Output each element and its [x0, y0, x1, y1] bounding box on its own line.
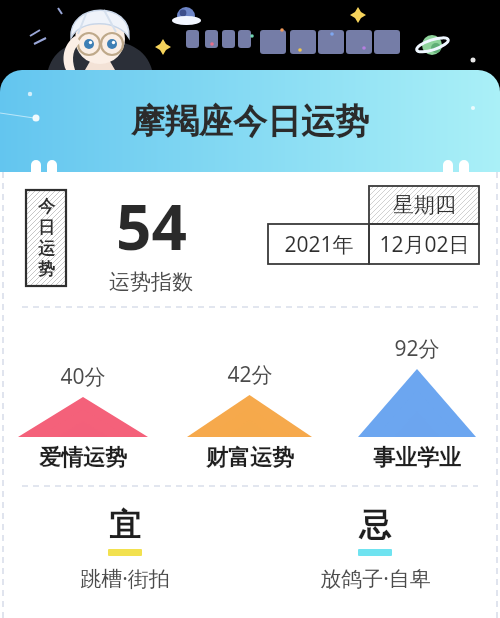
staticText: 势 — [38, 259, 55, 280]
staticText: 事业学业 — [373, 444, 461, 472]
staticText: 跳槽·街拍 — [80, 564, 170, 593]
staticText: 12月02日 — [379, 230, 470, 259]
staticText: 运 — [38, 238, 55, 259]
staticText: 放鸽子·自卑 — [320, 564, 431, 593]
staticText: 财富运势 — [206, 444, 294, 472]
staticText: 54 — [116, 184, 187, 268]
staticText: 今 — [38, 196, 55, 217]
button[interactable]: 摩羯座今日运势 — [0, 70, 500, 172]
button[interactable]: 宜 — [0, 505, 250, 593]
staticText: 2021年 — [284, 230, 354, 259]
button[interactable]: 忌 — [250, 505, 500, 593]
staticText: 42分 — [227, 360, 273, 389]
staticText: 92分 — [394, 334, 440, 363]
button[interactable]: 今 — [26, 190, 66, 286]
button[interactable]: 92分 — [333, 334, 500, 472]
staticText: 忌 — [359, 505, 391, 545]
staticText: 星期四 — [393, 192, 456, 218]
staticText: 日 — [38, 217, 55, 238]
button[interactable]: 42分 — [166, 360, 333, 472]
staticText: 爱情运势 — [39, 444, 127, 472]
button[interactable]: 54 — [88, 184, 214, 295]
staticText: 运势指数 — [109, 269, 193, 295]
button[interactable]: 星期四 — [268, 186, 479, 226]
staticText: 宜 — [109, 505, 141, 545]
other: Luke大叔星座馆 — [0, 0, 500, 70]
staticText: 摩羯座今日运势 — [131, 100, 369, 143]
staticText: 40分 — [60, 362, 106, 391]
button[interactable]: 40分 — [0, 362, 166, 472]
